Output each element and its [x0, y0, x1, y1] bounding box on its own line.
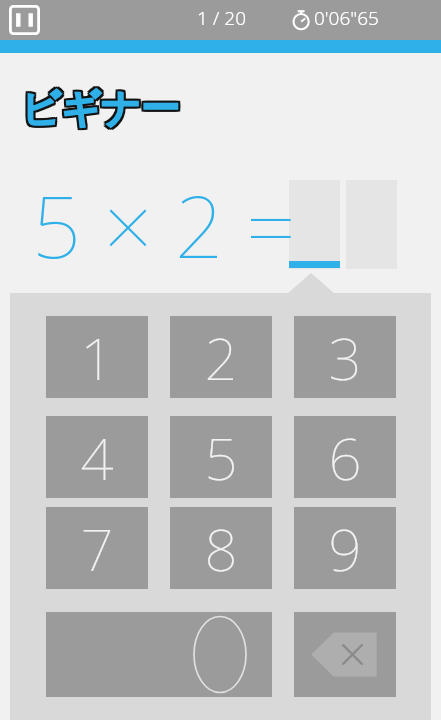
staticText: 3 — [328, 318, 362, 397]
staticText: ビギナー — [23, 86, 182, 135]
staticText: ビギナー — [21, 82, 180, 131]
button[interactable]: 7 — [46, 507, 148, 589]
button[interactable]: 2 — [170, 316, 272, 398]
staticText: 2 — [204, 318, 238, 397]
button[interactable]: 5 — [170, 416, 272, 498]
button[interactable]: Backspace — [294, 612, 396, 697]
staticText: 9 — [328, 509, 362, 588]
staticText: 8 — [204, 509, 238, 588]
staticText: 1 — [80, 318, 114, 397]
staticText: 6 — [328, 418, 362, 497]
staticText: ビギナー — [19, 82, 178, 131]
staticText: 0'06"65 — [314, 5, 379, 31]
staticText: ビギナー — [22, 84, 181, 133]
button[interactable]: 6 — [294, 416, 396, 498]
staticText: ビギナー — [19, 84, 178, 133]
staticText: 7 — [80, 509, 114, 588]
staticText: ビギナー — [21, 86, 180, 135]
staticText: ビギナー — [21, 84, 180, 133]
button[interactable]: 9 — [294, 507, 396, 589]
staticText: 1 / 20 — [197, 5, 247, 31]
staticText: ビギナー — [23, 82, 182, 131]
staticText: 4 — [80, 418, 114, 497]
button[interactable]: Pause — [9, 5, 40, 35]
staticText: ビギナー — [23, 84, 182, 133]
staticText: ビギナー — [21, 83, 180, 132]
button[interactable]: Zero — [46, 612, 272, 697]
staticText: ビギナー — [20, 84, 179, 133]
button[interactable]: 8 — [170, 507, 272, 589]
staticText: ビギナー — [19, 86, 178, 135]
button[interactable]: 4 — [46, 416, 148, 498]
button[interactable]: 1 — [46, 316, 148, 398]
button[interactable]: 3 — [294, 316, 396, 398]
staticText: 5 — [204, 418, 238, 497]
staticText: ビギナー — [21, 85, 180, 134]
staticText: 5 × 2 = — [32, 166, 296, 283]
